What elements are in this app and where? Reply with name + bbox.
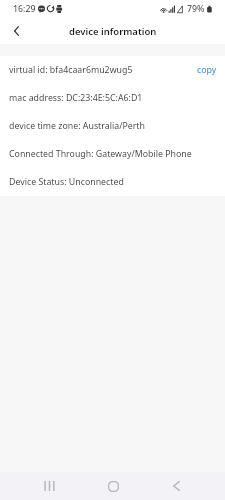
staticText: copy [197,64,217,76]
staticText: 79% [187,3,205,15]
staticText: Device Status: Unconnected [9,176,124,188]
staticText: 16:29 [13,3,36,15]
staticText: virtual id: bfa4caar6mu2wug5 [9,64,133,76]
button[interactable]: copy [195,59,219,81]
button[interactable]: Back [1,18,32,44]
button[interactable]: Back [160,472,192,500]
button[interactable]: Recent apps [34,472,66,500]
button[interactable]: Home [97,472,129,500]
staticText: Connected Through: Gateway/Mobile Phone [9,148,192,160]
staticText: device information [69,25,157,38]
staticText: mac address: DC:23:4E:5C:A6:D1 [9,92,143,104]
staticText: device time zone: Australia/Perth [9,120,145,132]
